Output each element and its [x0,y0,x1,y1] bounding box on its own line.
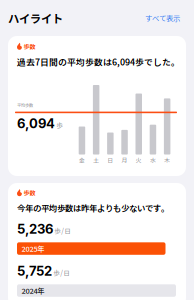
staticText: 平均歩数 [17,102,33,108]
staticText: 歩/日 [54,226,71,236]
staticText: 過去7日間の平均歩数は6,094歩でした。 [17,55,180,68]
staticText: 歩数 [23,42,35,51]
staticText: 5,236 [17,221,53,237]
staticText: 火 [136,156,142,164]
staticText: 土 [93,156,99,164]
staticText: 水 [150,156,156,164]
staticText: 日 [107,156,113,164]
button[interactable]: すべて表示 [145,13,180,23]
staticText: 歩 [56,121,63,130]
staticText: 歩/日 [53,268,70,278]
staticText: 2024年 [21,285,44,296]
staticText: 6,094 [17,116,55,131]
staticText: 月 [121,156,127,164]
staticText: ハイライト [8,10,63,26]
staticText: 木 [164,156,170,164]
staticText: 歩数 [23,188,35,197]
button[interactable]: 歩数 [8,183,186,300]
button[interactable]: 歩数 [8,36,186,176]
staticText: すべて表示 [145,13,180,23]
staticText: 金 [79,156,85,164]
staticText: 今年の平均歩数は昨年よりも少ないです。 [17,202,169,214]
staticText: 5,752 [17,263,52,279]
staticText: 2025年 [21,243,44,254]
